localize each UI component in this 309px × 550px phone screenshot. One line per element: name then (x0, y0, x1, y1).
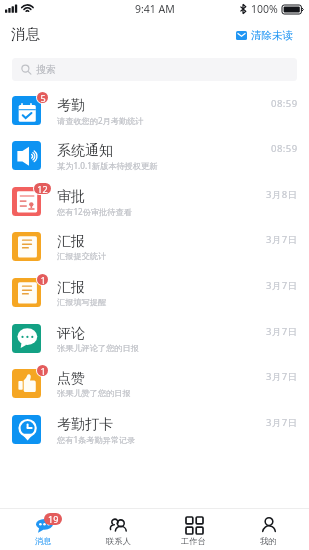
staticText: 消息 (11, 25, 40, 43)
button[interactable]: 考勤打卡 (0, 410, 309, 456)
staticText: 某为1.0.1新版本待授权更新 (57, 160, 158, 171)
staticText: 审批 (57, 188, 85, 206)
staticText: 我的 (260, 536, 277, 546)
button[interactable]: 5 (0, 91, 309, 137)
staticText: 08:59 (271, 97, 298, 110)
staticText: 您有12份审批待查看 (57, 206, 132, 217)
button[interactable]: 汇报 (0, 227, 309, 273)
button[interactable]: 1 (0, 364, 309, 410)
button[interactable]: 搜索 (12, 58, 297, 81)
staticText: 汇报 (57, 233, 85, 251)
staticText: 张果儿评论了您的日报 (57, 343, 139, 353)
staticText: 汇报提交统计 (57, 251, 107, 261)
button[interactable]: 我的 (231, 509, 306, 550)
staticText: 1 (40, 274, 46, 285)
staticText: 3月8日 (266, 188, 298, 201)
button[interactable]: 工作台 (156, 509, 231, 550)
staticText: 3月7日 (266, 233, 298, 246)
staticText: 5 (40, 92, 46, 103)
staticText: 系统通知 (57, 142, 113, 160)
staticText: 12 (37, 183, 48, 194)
staticText: 考勤 (57, 97, 85, 115)
staticText: 工作台 (181, 536, 206, 546)
staticText: 考勤打卡 (57, 416, 113, 434)
staticText: 搜索 (36, 63, 56, 76)
staticText: 联系人 (106, 536, 131, 546)
button[interactable]: 系统通知 (0, 136, 309, 182)
staticText: 汇报填写提醒 (57, 297, 107, 307)
staticText: 3月7日 (266, 370, 298, 383)
staticText: 3月7日 (266, 416, 298, 429)
staticText: 点赞 (57, 370, 85, 388)
staticText: 清除未读 (251, 29, 293, 42)
button[interactable]: 19 (6, 509, 81, 550)
staticText: 08:59 (271, 142, 298, 155)
staticText: 评论 (57, 325, 85, 343)
staticText: 请查收您的2月考勤统计 (57, 115, 144, 126)
staticText: 100% (251, 2, 278, 16)
button[interactable]: 1 (0, 273, 309, 319)
staticText: 汇报 (57, 279, 85, 297)
staticText: 3月7日 (266, 325, 298, 338)
staticText: 您有1条考勤异常记录 (57, 434, 136, 445)
staticText: 9:41 AM (135, 2, 175, 16)
button[interactable]: 清除未读 (236, 29, 293, 42)
button[interactable]: 联系人 (81, 509, 156, 550)
staticText: 19 (48, 513, 59, 525)
staticText: 消息 (35, 536, 52, 546)
button[interactable]: 评论 (0, 319, 309, 365)
button[interactable]: 12 (0, 182, 309, 228)
staticText: 3月7日 (266, 279, 298, 292)
staticText: 1 (40, 365, 46, 376)
staticText: 张果儿赞了您的日报 (57, 388, 131, 398)
